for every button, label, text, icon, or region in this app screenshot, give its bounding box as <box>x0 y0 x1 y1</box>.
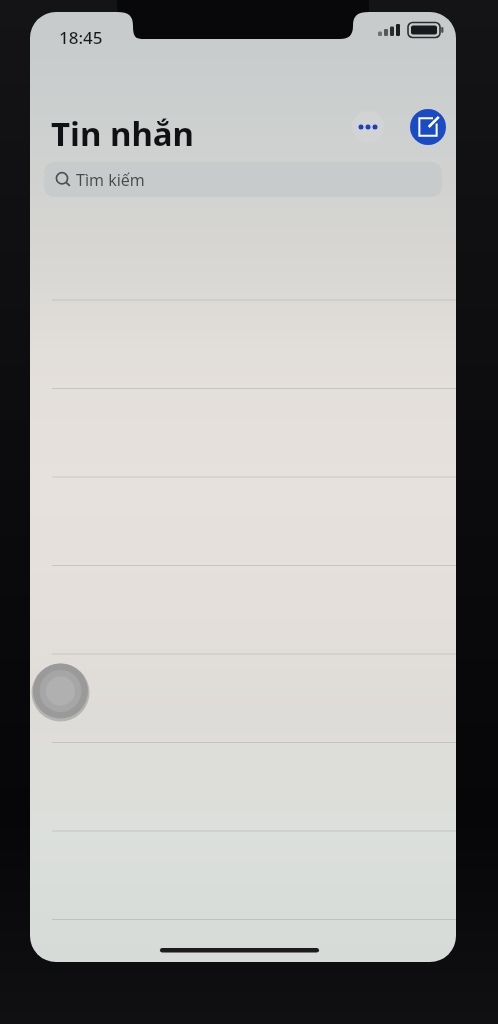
button[interactable]: Tìm kiếm <box>44 162 442 197</box>
staticText: Tìm kiếm <box>76 169 145 191</box>
button[interactable]: New message <box>410 109 446 145</box>
button[interactable]: More options <box>352 111 384 143</box>
staticText: Tin nhắn <box>51 111 195 156</box>
staticText: 18:45 <box>59 26 103 49</box>
